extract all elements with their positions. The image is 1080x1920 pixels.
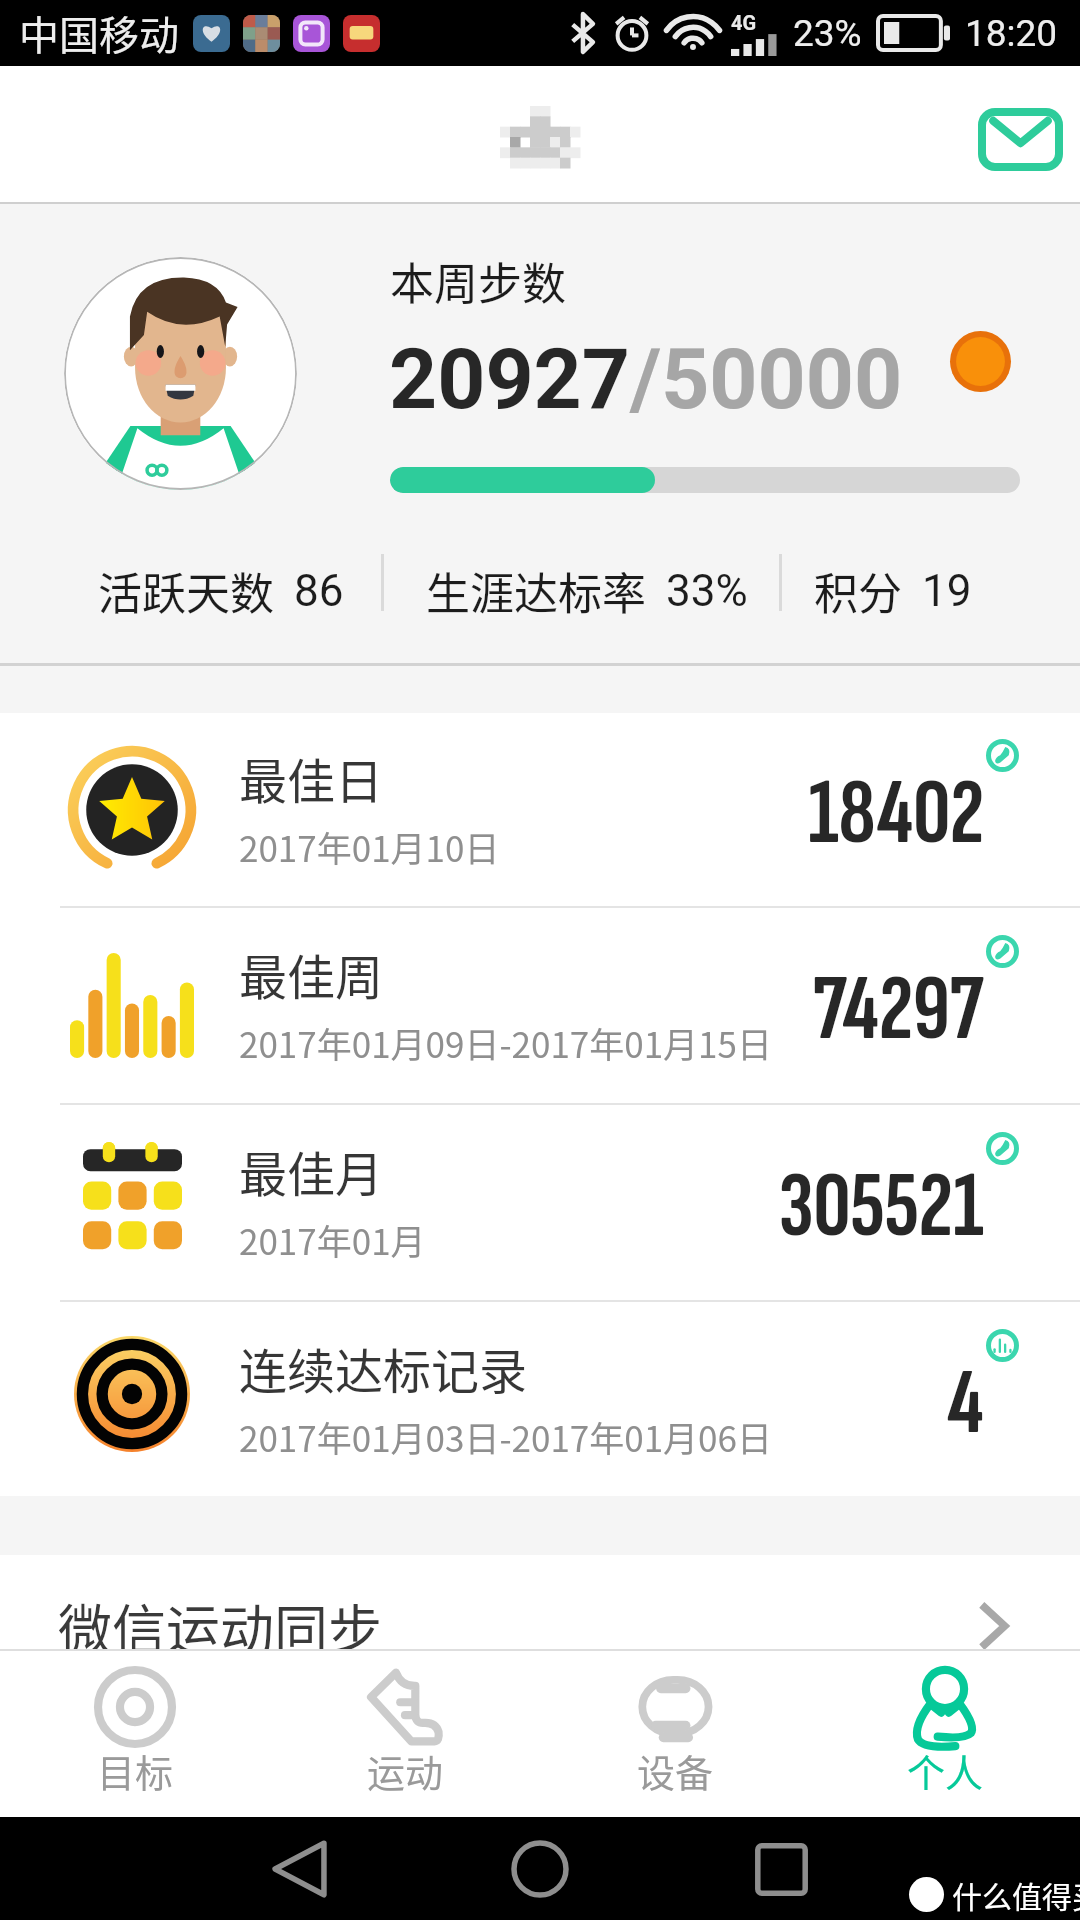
- button[interactable]: 设备: [540, 1651, 810, 1817]
- staticText: 18:20: [965, 12, 1058, 55]
- button[interactable]: Recent apps: [755, 1834, 825, 1904]
- button[interactable]: 积分: [744, 550, 1042, 631]
- staticText: 运动: [367, 1743, 444, 1798]
- staticText: 目标: [97, 1743, 174, 1798]
- button[interactable]: 最佳月: [0, 1105, 1080, 1300]
- button[interactable]: Statistics: [986, 1329, 1019, 1362]
- staticText: 19: [922, 565, 972, 617]
- button[interactable]: 个人: [810, 1651, 1080, 1817]
- staticText: 本周步数: [390, 249, 566, 313]
- staticText: /50000: [630, 330, 903, 428]
- button[interactable]: 微信运动同步: [0, 1555, 1080, 1649]
- staticText: 最佳周: [239, 939, 384, 1009]
- staticText: 设备: [637, 1743, 714, 1798]
- staticText: 活跃天数: [98, 559, 274, 623]
- staticText: 2017年01月03日-2017年01月06日: [239, 1411, 772, 1462]
- button[interactable]: Home: [511, 1834, 581, 1904]
- staticText: 20927: [389, 330, 630, 428]
- button[interactable]: 运动: [270, 1651, 540, 1817]
- staticText: 积分: [814, 559, 902, 623]
- staticText: 33%: [666, 565, 748, 617]
- button[interactable]: 最佳日: [0, 713, 1080, 906]
- staticText: 4G: [731, 11, 757, 34]
- staticText: 个人: [907, 1743, 984, 1798]
- button[interactable]: Steps record: [986, 1132, 1019, 1165]
- button[interactable]: 最佳周: [0, 908, 1080, 1103]
- staticText: 23%: [793, 12, 862, 55]
- button[interactable]: 生涯达标率: [389, 550, 784, 631]
- button[interactable]: Back: [273, 1834, 343, 1904]
- button[interactable]: Steps record: [986, 935, 1019, 968]
- staticText: 2017年01月: [239, 1214, 426, 1265]
- staticText: 18402: [808, 758, 984, 870]
- staticText: 74297: [813, 954, 984, 1066]
- staticText: 2017年01月09日-2017年01月15日: [239, 1017, 772, 1068]
- staticText: 2017年01月10日: [239, 821, 500, 872]
- button[interactable]: 活跃天数: [30, 550, 411, 631]
- staticText: 什么值得买: [952, 1873, 1080, 1916]
- button[interactable]: Messages: [966, 85, 1074, 193]
- staticText: 86: [294, 565, 344, 617]
- staticText: 305521: [779, 1151, 984, 1263]
- button[interactable]: 目标: [0, 1651, 270, 1817]
- staticText: 连续达标记录: [239, 1333, 528, 1403]
- button[interactable]: 连续达标记录: [0, 1302, 1080, 1496]
- staticText: 中国移动: [19, 4, 179, 62]
- staticText: 最佳月: [239, 1136, 384, 1206]
- staticText: 微信运动同步: [58, 1587, 382, 1665]
- button[interactable]: Steps record: [986, 739, 1019, 772]
- staticText: 4: [947, 1348, 984, 1460]
- staticText: 最佳日: [239, 743, 384, 813]
- staticText: 生涯达标率: [426, 559, 646, 623]
